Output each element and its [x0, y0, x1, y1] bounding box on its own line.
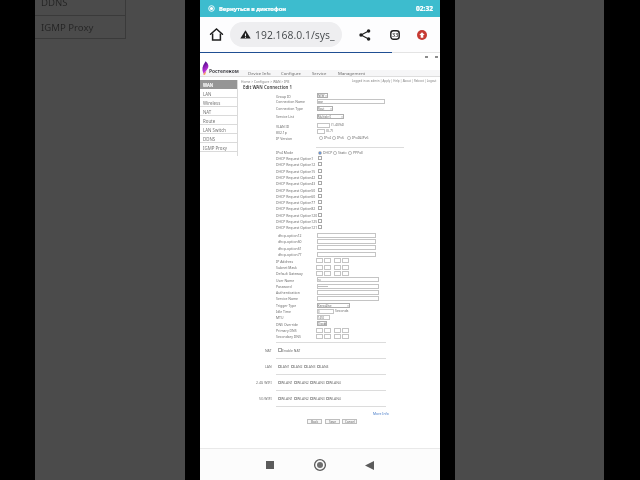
staticText: dhcp-option12	[278, 233, 302, 238]
staticText: dhcp-option77	[278, 252, 302, 257]
button[interactable]	[318, 219, 322, 223]
button[interactable]	[278, 381, 281, 384]
button[interactable]: Tabs, 33 open	[384, 24, 405, 45]
button[interactable]: Back	[307, 419, 322, 424]
button[interactable]: Save	[325, 419, 340, 424]
button[interactable]	[318, 188, 322, 192]
staticText: Secondary DNS	[276, 334, 301, 339]
button[interactable]	[318, 194, 322, 198]
staticText: DHCP Request Option15	[276, 169, 316, 174]
button[interactable]	[304, 365, 307, 368]
button[interactable]: Device Info	[248, 67, 271, 79]
staticText: Authentication	[276, 290, 300, 295]
button[interactable]: IGMP Proxy	[200, 143, 238, 152]
button[interactable]: Configure	[281, 67, 301, 79]
staticText: WLAN4	[329, 380, 341, 385]
button[interactable]: DHCP	[318, 150, 333, 155]
staticText: DNS Override	[276, 322, 299, 327]
button[interactable]: Keep Alive	[317, 303, 350, 308]
staticText: Service Name	[276, 296, 299, 301]
staticText: Trigger Type	[276, 303, 297, 308]
button[interactable]	[318, 181, 322, 185]
staticText: DDNS	[41, 0, 68, 9]
button[interactable]: Static	[333, 150, 347, 155]
button[interactable]: LAN	[200, 89, 238, 98]
button[interactable]: Update available	[411, 24, 432, 45]
button[interactable]	[278, 397, 281, 400]
button[interactable]: LAN Switch	[200, 125, 238, 134]
staticText: Back	[311, 420, 319, 424]
staticText: ru	[318, 278, 321, 282]
button[interactable]: IPv4&IPv6	[347, 135, 369, 140]
button[interactable]	[318, 162, 322, 166]
button[interactable]: NAT	[200, 107, 238, 116]
button[interactable]: Share	[354, 24, 375, 45]
button[interactable]	[278, 348, 282, 352]
staticText: Rout	[318, 107, 325, 111]
button[interactable]: IPv6	[332, 135, 344, 140]
staticText: WLAN4	[329, 396, 341, 401]
staticText: DHCP Request Option77	[276, 200, 316, 205]
button[interactable]	[318, 156, 322, 160]
staticText: PPPoE	[353, 150, 364, 155]
button[interactable]	[318, 213, 322, 217]
staticText: Device Info	[248, 70, 271, 76]
staticText: Logged in as: admin | Apply | Help | Abo…	[352, 79, 437, 83]
button[interactable]: PPPoE	[348, 150, 364, 155]
staticText: WLAN3	[313, 380, 325, 385]
button[interactable]	[310, 381, 313, 384]
button[interactable]: Home	[306, 451, 334, 479]
button[interactable]: More Info	[373, 411, 389, 416]
button[interactable]	[294, 381, 297, 384]
button[interactable]	[326, 381, 329, 384]
button[interactable]	[318, 200, 322, 204]
staticText: DHCP Request Option1	[276, 156, 314, 161]
button[interactable]: WAN	[200, 80, 238, 89]
staticText: DHCP Request Option82	[276, 206, 316, 211]
staticText: WLAN2	[297, 380, 309, 385]
staticText: DHCP Request Option12	[276, 162, 316, 167]
button[interactable]: Multiple 0	[317, 114, 344, 119]
staticText: Idle Time	[276, 309, 291, 314]
button[interactable]	[318, 175, 322, 179]
button[interactable]	[317, 365, 320, 368]
button[interactable]: IPv4	[319, 135, 331, 140]
staticText: IPv4	[324, 135, 331, 140]
staticText: DHCP Request Option125	[276, 219, 318, 224]
button[interactable]	[278, 365, 281, 368]
staticText: WAN	[203, 82, 214, 88]
button[interactable]	[318, 169, 322, 173]
button[interactable]	[310, 397, 313, 400]
button[interactable]: DDNS	[200, 134, 238, 143]
staticText: DHCP Request Option43	[276, 181, 316, 186]
button[interactable]	[326, 397, 329, 400]
button[interactable]: Recent apps	[256, 451, 284, 479]
button[interactable]: Back	[355, 451, 383, 479]
staticText: Configure	[281, 70, 301, 76]
staticText: Primary DNS	[276, 328, 297, 333]
staticText: IP Version	[276, 136, 293, 141]
button[interactable]: Cancel	[342, 419, 357, 424]
button[interactable]: NEW	[317, 93, 328, 98]
button[interactable]: Management	[338, 67, 366, 79]
button[interactable]: Home	[206, 24, 227, 45]
staticText: 802.1p	[276, 130, 287, 135]
button[interactable]: Disable	[317, 321, 327, 326]
button[interactable]: Service	[312, 67, 327, 79]
button[interactable]: Route	[200, 116, 238, 125]
staticText: DDNS	[203, 136, 216, 142]
button[interactable]	[318, 225, 322, 229]
staticText: Ростелеком	[209, 68, 239, 75]
button[interactable]: Rout	[317, 106, 333, 111]
button[interactable]: Wireless	[200, 98, 238, 107]
button[interactable]	[318, 206, 322, 210]
button[interactable]: 192.168.0.1/sys_	[230, 22, 342, 47]
button[interactable]	[294, 397, 297, 400]
button[interactable]	[291, 365, 294, 368]
staticText: LAN Switch	[203, 127, 226, 133]
staticText: Route	[203, 118, 216, 124]
staticText: Home > Configure > WAN > IPB	[241, 79, 290, 83]
staticText: 5G WIFI	[259, 396, 272, 401]
staticText: IPv6	[337, 135, 344, 140]
staticText: Enable NAT	[282, 348, 301, 353]
